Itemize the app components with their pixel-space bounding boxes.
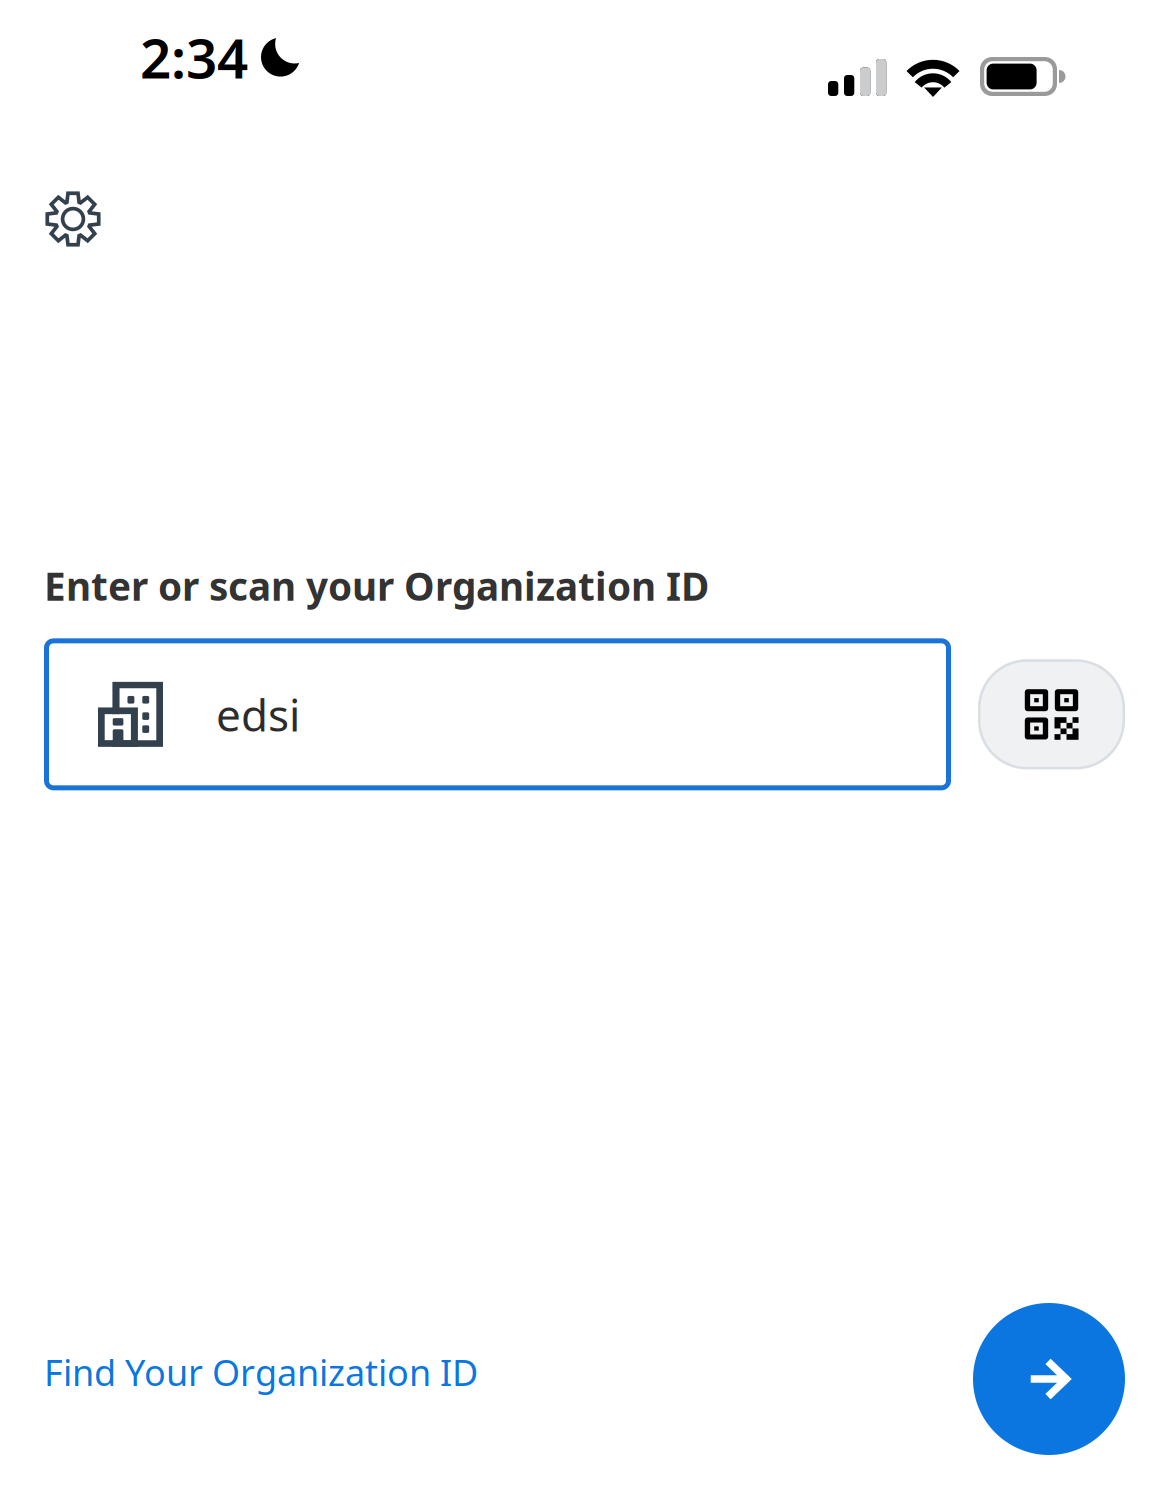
staticText: 2:34 xyxy=(140,21,248,94)
button[interactable]: Find Your Organization ID xyxy=(44,1334,478,1424)
button[interactable]: Settings xyxy=(32,178,114,260)
button[interactable]: Scan QR code xyxy=(978,659,1125,769)
staticText: Enter or scan your Organization ID xyxy=(44,560,709,611)
staticText: edsi xyxy=(216,685,300,743)
button[interactable]: edsi xyxy=(44,638,951,790)
button[interactable]: Continue xyxy=(973,1303,1125,1455)
staticText: Find Your Organization ID xyxy=(44,1348,478,1396)
